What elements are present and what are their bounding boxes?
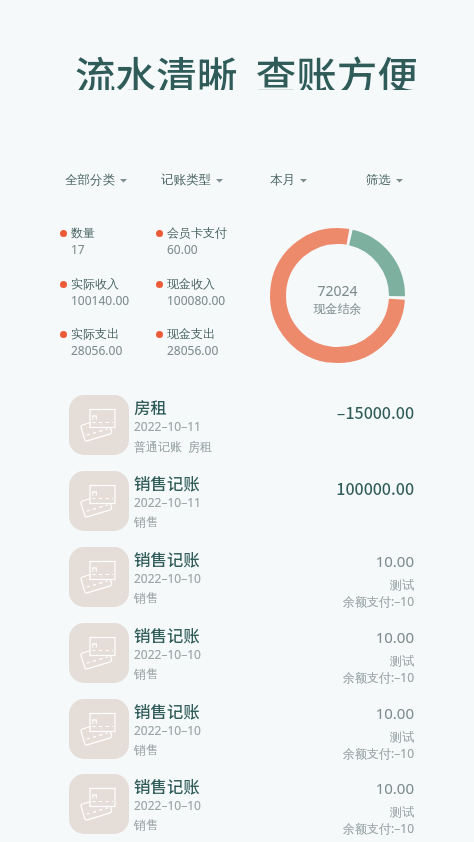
staticText: 会员卡支付 [167,225,227,240]
staticText: 2022–10–10 [134,797,201,813]
staticText: 28056.00 [71,342,123,358]
staticText: 实际支出 [71,326,119,341]
staticText: 100080.00 [167,292,226,308]
staticText: 2022–10–11 [134,418,201,434]
staticText: 销售记账 [134,547,200,571]
staticText: 28056.00 [167,342,219,358]
staticText: 72024 [270,281,405,300]
button[interactable]: 销售记账 [0,464,474,540]
staticText: 销售记账 [134,623,200,647]
staticText: 2022–10–10 [134,722,201,738]
button[interactable]: 本月 [270,168,307,192]
staticText: 销售记账 [134,774,200,798]
staticText: 销售记账 [134,471,200,495]
staticText: 10.00 [200,627,414,647]
staticText: 测试 [200,653,414,668]
staticText: 10.00 [200,778,414,798]
staticText: 现金结余 [270,301,405,316]
staticText: 60.00 [167,241,198,257]
staticText: 测试 [200,804,414,819]
staticText: 记账类型 [161,172,211,188]
button[interactable]: 销售记账 [0,540,474,616]
button[interactable]: 房租 [0,388,474,464]
staticText: 销售 [134,514,158,529]
staticText: 销售 [134,742,158,757]
staticText: 100140.00 [71,292,130,308]
staticText: 全部分类 [65,172,115,188]
staticText: 筛选 [366,172,391,188]
staticText: 现金收入 [167,276,215,291]
staticText: 本月 [270,172,295,188]
staticText: 销售 [134,590,158,605]
staticText: –15000.00 [200,400,414,423]
button[interactable]: 销售记账 [0,692,474,768]
button[interactable]: 销售记账 [0,767,474,842]
staticText: 余额支付:–10 [200,820,414,836]
staticText: 销售 [134,666,158,681]
staticText: 余额支付:–10 [200,669,414,685]
staticText: 10.00 [200,551,414,571]
staticText: 2022–10–10 [134,646,201,662]
staticText: 房租 [134,395,167,419]
button[interactable]: 筛选 [366,168,403,192]
staticText: 17 [71,241,85,257]
staticText: 实际收入 [71,276,119,291]
staticText: 100000.00 [200,476,414,499]
staticText: 现金支出 [167,326,215,341]
staticText: 销售 [134,817,158,832]
staticText: 2022–10–10 [134,570,201,586]
staticText: 余额支付:–10 [200,745,414,761]
staticText: 余额支付:–10 [200,593,414,609]
staticText: 2022–10–11 [134,494,201,510]
staticText: 测试 [200,577,414,592]
staticText: 数量 [71,225,95,240]
button[interactable]: 销售记账 [0,616,474,692]
button[interactable]: 记账类型 [161,168,223,192]
staticText: 流水清晰 查账方便 [75,44,419,90]
staticText: 10.00 [200,703,414,723]
staticText: 测试 [200,729,414,744]
staticText: 销售记账 [134,699,200,723]
button[interactable]: 全部分类 [65,168,127,192]
staticText: 普通记账 房租 [134,438,213,454]
